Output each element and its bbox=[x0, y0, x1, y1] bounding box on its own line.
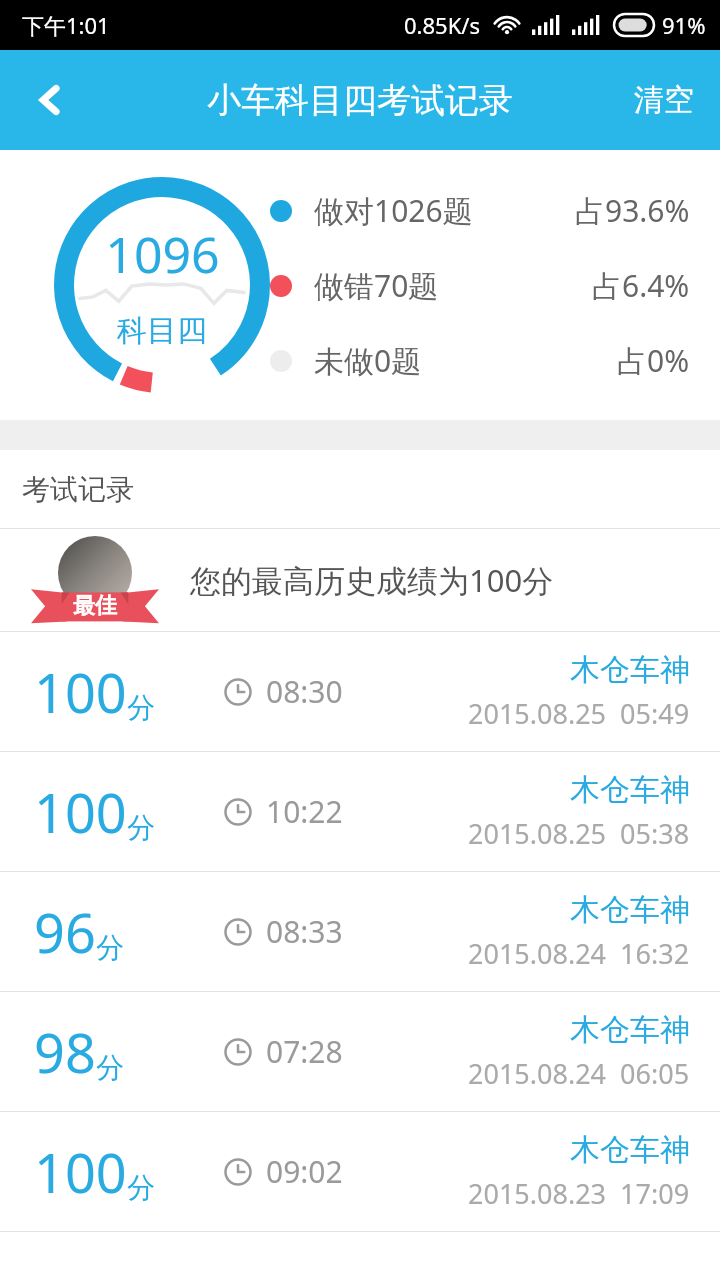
staticText: 2015.08.24 16:32 bbox=[468, 935, 690, 972]
staticText: 占93.6% bbox=[575, 190, 690, 231]
staticText: 科目四 bbox=[117, 312, 207, 350]
staticText: 2015.08.25 05:49 bbox=[468, 695, 690, 732]
staticText: 98 bbox=[34, 1015, 96, 1089]
staticText: 最佳 bbox=[73, 592, 117, 620]
staticText: 您的最高历史成绩为100分 bbox=[190, 559, 554, 601]
staticText: 100 bbox=[34, 775, 127, 849]
staticText: 占6.4% bbox=[592, 265, 690, 306]
staticText: 09:02 bbox=[266, 1151, 343, 1192]
staticText: 100 bbox=[34, 655, 127, 729]
staticText: 分 bbox=[127, 1170, 155, 1205]
button[interactable]: 96 bbox=[0, 872, 720, 991]
staticText: 占0% bbox=[617, 340, 690, 381]
staticText: 分 bbox=[96, 1050, 124, 1085]
button[interactable]: 100 bbox=[0, 752, 720, 871]
button[interactable]: 100 bbox=[0, 1112, 720, 1231]
staticText: 木仓车神 bbox=[570, 651, 690, 689]
staticText: 木仓车神 bbox=[570, 1131, 690, 1169]
staticText: 分 bbox=[127, 690, 155, 725]
staticText: 07:28 bbox=[266, 1031, 343, 1072]
staticText: 木仓车神 bbox=[570, 1011, 690, 1049]
button[interactable]: 100 bbox=[0, 632, 720, 751]
button[interactable]: 98 bbox=[0, 992, 720, 1111]
staticText: 小车科目四考试记录 bbox=[207, 79, 513, 122]
staticText: 下午1:01 bbox=[22, 10, 110, 40]
staticText: 2015.08.24 06:05 bbox=[468, 1055, 690, 1092]
staticText: 考试记录 bbox=[22, 472, 134, 507]
staticText: 08:30 bbox=[266, 671, 343, 712]
staticText: 100 bbox=[34, 1135, 127, 1209]
staticText: 08:33 bbox=[266, 911, 343, 952]
staticText: 分 bbox=[96, 930, 124, 965]
button[interactable]: Back bbox=[0, 50, 100, 150]
staticText: 2015.08.25 05:38 bbox=[468, 815, 690, 852]
staticText: 10:22 bbox=[266, 791, 343, 832]
staticText: 清空 bbox=[634, 81, 694, 119]
staticText: 0.85K/s bbox=[404, 10, 480, 40]
staticText: 91% bbox=[662, 10, 706, 40]
staticText: 未做0题 bbox=[314, 340, 422, 381]
staticText: 分 bbox=[127, 810, 155, 845]
staticText: 96 bbox=[34, 895, 96, 969]
staticText: 木仓车神 bbox=[570, 891, 690, 929]
staticText: 做错70题 bbox=[314, 265, 439, 306]
staticText: 1096 bbox=[105, 220, 220, 288]
staticText: 做对1026题 bbox=[314, 190, 473, 231]
button[interactable]: 清空 bbox=[608, 50, 720, 150]
staticText: 2015.08.23 17:09 bbox=[468, 1175, 690, 1212]
button[interactable]: 最佳 bbox=[0, 529, 720, 631]
staticText: 木仓车神 bbox=[570, 771, 690, 809]
